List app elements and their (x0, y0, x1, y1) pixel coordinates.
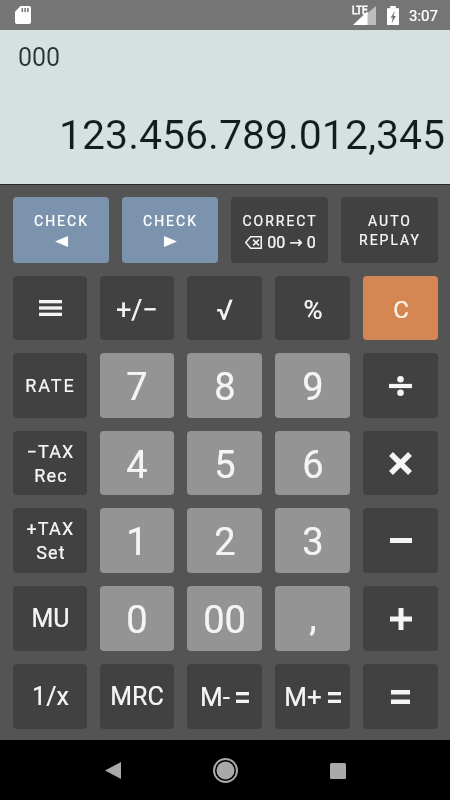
button[interactable]: Divide (363, 353, 438, 418)
button[interactable]: +/− (100, 276, 174, 340)
staticText: % (303, 295, 323, 325)
button[interactable]: 2 (187, 508, 262, 573)
button[interactable]: M+ (275, 664, 350, 729)
staticText: 7 (126, 365, 148, 410)
staticText: M+ (284, 682, 322, 712)
button[interactable]: % (275, 276, 350, 340)
staticText: 00 → 0 (267, 233, 316, 252)
staticText: RATE (25, 375, 76, 396)
staticText: CHECK (34, 213, 89, 229)
button[interactable]: 0 (100, 586, 174, 651)
button[interactable]: Recents (315, 748, 360, 793)
staticText: 3:07 (409, 7, 438, 25)
button[interactable]: Equals (363, 664, 438, 729)
staticText: 1/x (32, 682, 69, 711)
staticText: AUTO (368, 213, 412, 229)
button[interactable]: CHECK (13, 197, 109, 263)
staticText: , (309, 595, 317, 640)
staticText: 1 (126, 520, 148, 565)
button[interactable]: Comma (275, 586, 350, 651)
button[interactable]: RATE (13, 353, 87, 418)
staticText: 2 (214, 520, 236, 565)
button[interactable]: M- (187, 664, 262, 729)
staticText: REPLAY (359, 232, 421, 248)
button[interactable]: Back (90, 748, 135, 793)
staticText: MRC (110, 682, 164, 711)
staticText: 9 (302, 365, 324, 410)
staticText: M- (200, 682, 230, 712)
staticText: 00 (203, 598, 246, 643)
button[interactable]: 5 (187, 431, 262, 495)
button[interactable]: CORRECT (231, 197, 328, 263)
staticText: +TAX (26, 518, 75, 539)
button[interactable]: MRC (100, 664, 174, 729)
staticText: Set (36, 542, 66, 563)
button[interactable]: 4 (100, 431, 174, 495)
staticText: 000 (18, 43, 61, 72)
staticText: 4 (126, 443, 148, 488)
button[interactable]: Multiply (363, 431, 438, 495)
button[interactable]: 3 (275, 508, 350, 573)
staticText: 3 (302, 520, 324, 565)
staticText: CHECK (143, 213, 198, 229)
button[interactable]: 1/x (13, 664, 87, 729)
staticText: C (393, 296, 409, 324)
button[interactable]: 8 (187, 353, 262, 418)
staticText: 123.456.789.012,345 (59, 111, 446, 159)
staticText: √ (216, 294, 233, 327)
button[interactable]: 7 (100, 353, 174, 418)
button[interactable]: CHECK (122, 197, 218, 263)
button[interactable]: −TAX (13, 431, 87, 495)
staticText: 6 (302, 443, 324, 488)
button[interactable]: √ (187, 276, 262, 340)
button[interactable]: Menu (13, 276, 87, 340)
staticText: CORRECT (242, 213, 318, 229)
staticText: 0 (126, 598, 148, 643)
button[interactable]: 9 (275, 353, 350, 418)
button[interactable]: Plus (363, 586, 438, 651)
button[interactable]: MU (13, 586, 87, 651)
button[interactable]: +TAX (13, 508, 87, 573)
button[interactable]: AUTO (341, 197, 438, 263)
staticText: MU (31, 604, 70, 633)
button[interactable]: C (363, 276, 438, 340)
button[interactable]: 00 (187, 586, 262, 651)
staticText: 8 (214, 365, 236, 410)
staticText: 5 (214, 443, 236, 488)
button[interactable]: Minus (363, 508, 438, 573)
staticText: LTE (352, 5, 368, 17)
button[interactable]: 1 (100, 508, 174, 573)
staticText: +/− (116, 294, 158, 326)
staticText: −TAX (26, 441, 75, 462)
button[interactable]: Home (203, 748, 248, 793)
staticText: Rec (34, 465, 68, 486)
button[interactable]: 6 (275, 431, 350, 495)
